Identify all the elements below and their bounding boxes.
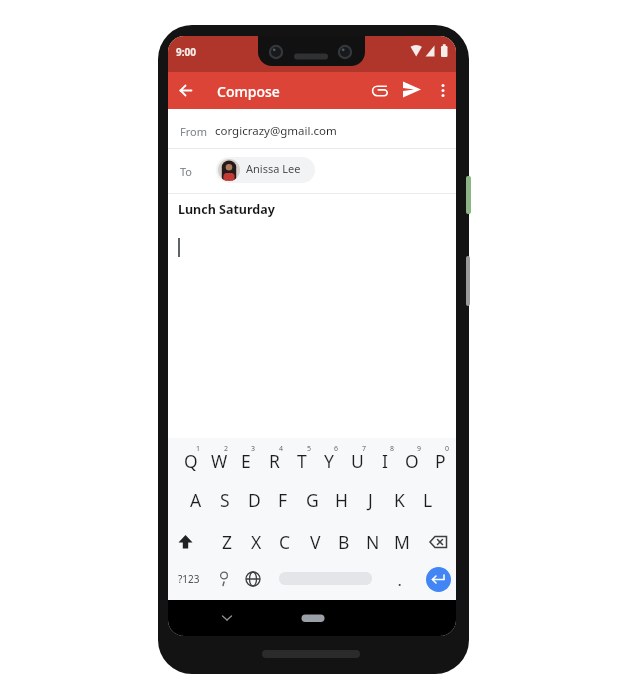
button[interactable]: O bbox=[399, 448, 425, 474]
staticText: S bbox=[220, 488, 230, 512]
button[interactable]: J bbox=[357, 487, 383, 513]
staticText: 3 bbox=[251, 444, 256, 454]
button[interactable]: Z bbox=[214, 529, 240, 555]
button[interactable]: M bbox=[389, 529, 415, 555]
staticText: From bbox=[180, 124, 207, 139]
button[interactable]: . bbox=[300, 566, 456, 596]
button[interactable] bbox=[168, 109, 456, 148]
button[interactable]: T bbox=[289, 448, 315, 474]
button[interactable]: B bbox=[331, 529, 357, 555]
staticText: Z bbox=[222, 530, 233, 554]
staticText: L bbox=[423, 488, 433, 512]
button[interactable]: U bbox=[344, 448, 370, 474]
button[interactable]: L bbox=[415, 487, 441, 513]
button[interactable]: K bbox=[386, 487, 412, 513]
staticText: J bbox=[368, 488, 373, 512]
staticText: E bbox=[241, 449, 251, 473]
staticText: N bbox=[366, 530, 380, 554]
staticText: D bbox=[248, 488, 261, 512]
staticText: I bbox=[382, 449, 388, 473]
staticText: W bbox=[211, 449, 228, 473]
staticText: 0 bbox=[445, 444, 450, 454]
staticText: To bbox=[180, 164, 193, 179]
button[interactable]: H bbox=[328, 487, 354, 513]
button[interactable]: V bbox=[302, 529, 328, 555]
staticText: H bbox=[335, 488, 348, 512]
staticText: U bbox=[351, 449, 364, 473]
button[interactable]: Y bbox=[316, 448, 342, 474]
staticText: ?123 bbox=[178, 572, 200, 586]
staticText: V bbox=[310, 530, 321, 554]
staticText: Q bbox=[184, 449, 198, 473]
staticText: A bbox=[190, 488, 202, 512]
button[interactable]: X bbox=[243, 529, 269, 555]
button[interactable]: Anissa Lee bbox=[216, 157, 315, 183]
button[interactable] bbox=[296, 609, 330, 625]
staticText: C bbox=[279, 530, 291, 554]
staticText: 9:00 bbox=[176, 45, 196, 59]
button[interactable]: D bbox=[241, 487, 267, 513]
button[interactable]: W bbox=[206, 448, 232, 474]
staticText: 1 bbox=[196, 444, 201, 454]
staticText: 2 bbox=[224, 444, 229, 454]
button[interactable] bbox=[214, 569, 234, 589]
button[interactable]: P bbox=[427, 448, 453, 474]
staticText: T bbox=[297, 449, 307, 473]
staticText: 9 bbox=[417, 444, 422, 454]
button[interactable]: C bbox=[272, 529, 298, 555]
button[interactable]: S bbox=[212, 487, 238, 513]
button[interactable] bbox=[400, 79, 424, 102]
button[interactable] bbox=[426, 567, 451, 592]
staticText: O bbox=[405, 449, 419, 473]
staticText: X bbox=[251, 530, 262, 554]
button[interactable] bbox=[174, 78, 198, 102]
staticText: B bbox=[338, 530, 350, 554]
button[interactable] bbox=[173, 530, 198, 555]
staticText: 7 bbox=[362, 444, 367, 454]
button[interactable]: E bbox=[233, 448, 259, 474]
button[interactable]: ?123 bbox=[168, 564, 289, 594]
staticText: G bbox=[306, 488, 319, 512]
button[interactable]: Q bbox=[178, 448, 204, 474]
staticText: K bbox=[394, 488, 405, 512]
button[interactable]: R bbox=[261, 448, 287, 474]
staticText: 8 bbox=[390, 444, 395, 454]
button[interactable]: N bbox=[360, 529, 386, 555]
button[interactable] bbox=[426, 530, 451, 555]
staticText: F bbox=[278, 488, 288, 512]
staticText: Y bbox=[324, 449, 334, 473]
staticText: Lunch Saturday bbox=[178, 201, 275, 218]
button[interactable] bbox=[168, 194, 456, 229]
button[interactable]: A bbox=[183, 487, 209, 513]
staticText: corgicrazy@gmail.com bbox=[215, 123, 337, 139]
staticText: Anissa Lee bbox=[246, 161, 301, 176]
button[interactable]: I bbox=[372, 448, 398, 474]
staticText: R bbox=[269, 449, 280, 473]
staticText: 6 bbox=[334, 444, 339, 454]
staticText: . bbox=[398, 573, 402, 589]
button[interactable] bbox=[434, 79, 452, 102]
staticText: 5 bbox=[307, 444, 312, 454]
staticText: 4 bbox=[279, 444, 284, 454]
button[interactable] bbox=[243, 569, 263, 589]
staticText: M bbox=[394, 530, 410, 554]
button[interactable] bbox=[168, 229, 456, 438]
button[interactable]: G bbox=[299, 487, 325, 513]
button[interactable]: F bbox=[270, 487, 296, 513]
staticText: Compose bbox=[217, 82, 280, 101]
button[interactable] bbox=[368, 79, 391, 102]
staticText: P bbox=[435, 449, 446, 473]
